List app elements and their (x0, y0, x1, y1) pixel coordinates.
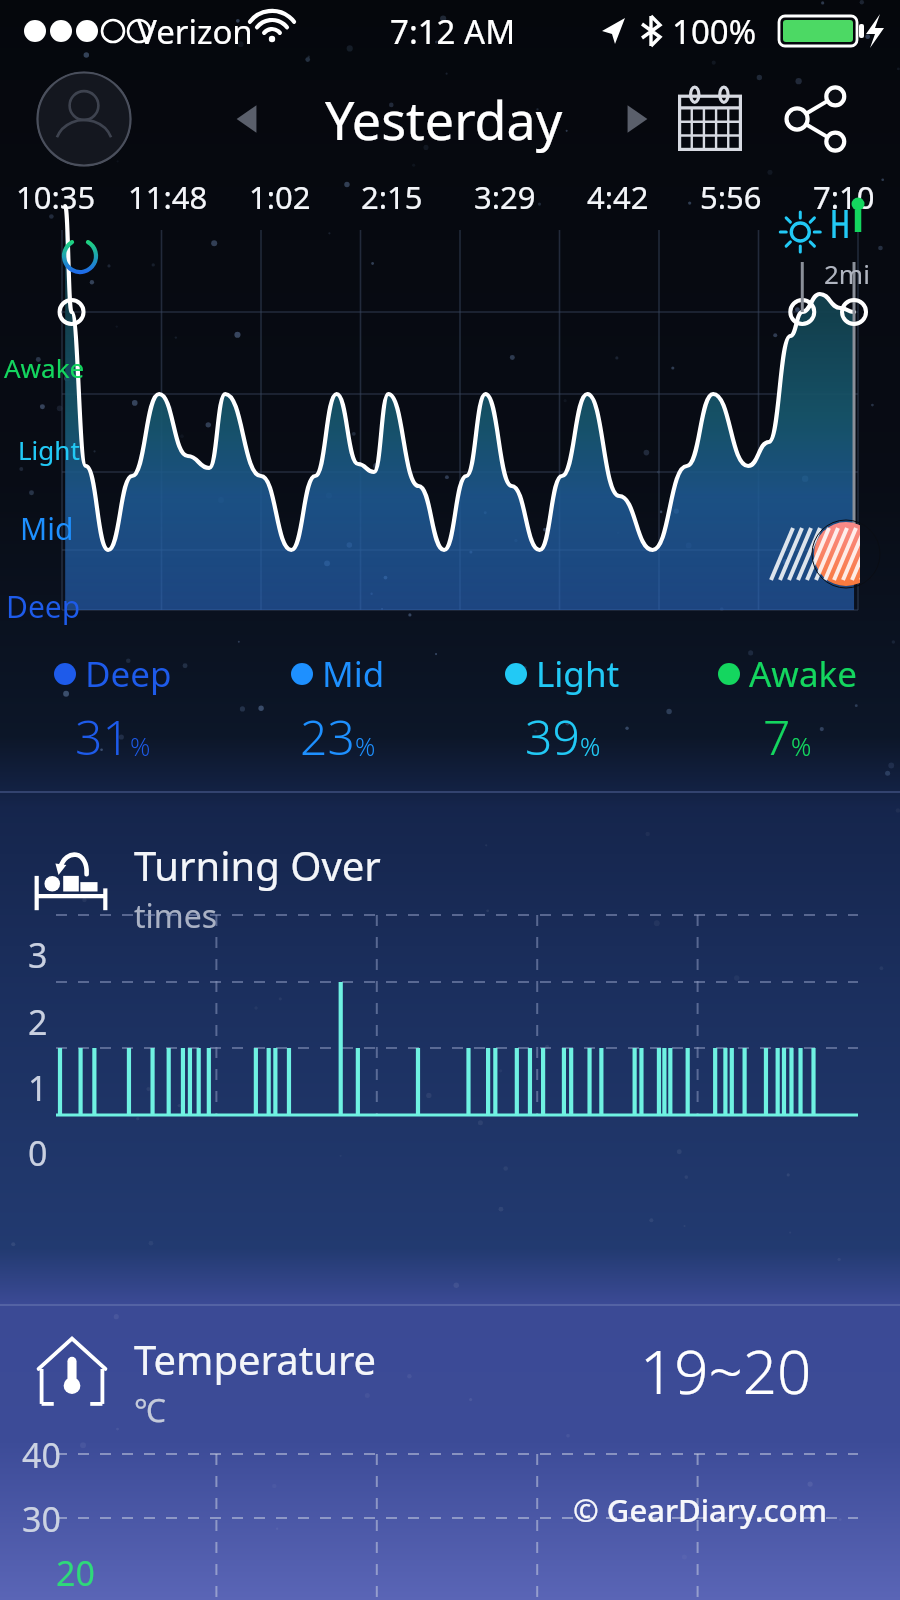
staticText: 19~20 (640, 1330, 812, 1412)
staticText: % (791, 729, 812, 763)
staticText: Turning Over (134, 838, 381, 892)
staticText: 3:29 (474, 176, 536, 218)
staticText: 0 (28, 1130, 48, 1176)
staticText: 7:12 AM (390, 9, 516, 54)
staticText: % (580, 729, 601, 763)
button[interactable]: Next day (604, 88, 666, 150)
staticText: 10:35 (16, 176, 96, 218)
button[interactable]: Calendar (672, 81, 748, 157)
staticText: 3 (28, 932, 48, 978)
staticText: 23 (300, 704, 355, 769)
staticText: 2mi (824, 256, 870, 291)
button[interactable]: Previous day (218, 88, 280, 150)
button[interactable]: Deep (0, 632, 225, 782)
button[interactable]: Mid (225, 632, 450, 782)
staticText: 7 (763, 704, 791, 769)
other: Temperature (34, 1334, 110, 1410)
other: Turning over (32, 840, 110, 918)
button[interactable]: Profile (36, 71, 132, 167)
button[interactable]: Awake (675, 632, 900, 782)
staticText: 1 (28, 1065, 48, 1111)
staticText: 40 (22, 1432, 61, 1478)
button[interactable]: Yesterday (325, 84, 563, 155)
staticText: Mid (20, 508, 74, 549)
staticText: Verizon (137, 9, 253, 54)
button[interactable]: Share (776, 80, 854, 158)
staticText: % (130, 729, 151, 763)
staticText: 7:10 (813, 176, 875, 218)
button[interactable]: Light (450, 632, 675, 782)
staticText: 100% (672, 9, 757, 54)
staticText: Awake (4, 350, 85, 385)
staticText: 11:48 (128, 176, 208, 218)
staticText: % (355, 729, 376, 763)
staticText: © GearDiary.com (573, 1489, 827, 1531)
staticText: Temperature (134, 1332, 377, 1386)
staticText: times (134, 894, 218, 938)
staticText: Deep (85, 650, 172, 698)
staticText: 1:02 (249, 176, 311, 218)
staticText: 4:42 (587, 176, 649, 218)
staticText: 39 (525, 704, 580, 769)
staticText: ℃ (134, 1388, 166, 1432)
staticText: 20 (56, 1550, 95, 1596)
staticText: Awake (749, 650, 857, 698)
staticText: Light (536, 650, 620, 698)
staticText: Light (18, 432, 80, 467)
staticText: 2 (28, 999, 48, 1045)
staticText: Deep (6, 586, 81, 627)
staticText: 5:56 (700, 176, 762, 218)
staticText: Mid (322, 650, 385, 698)
staticText: 31 (75, 704, 130, 769)
staticText: 30 (22, 1496, 61, 1542)
staticText: 2:15 (361, 176, 423, 218)
